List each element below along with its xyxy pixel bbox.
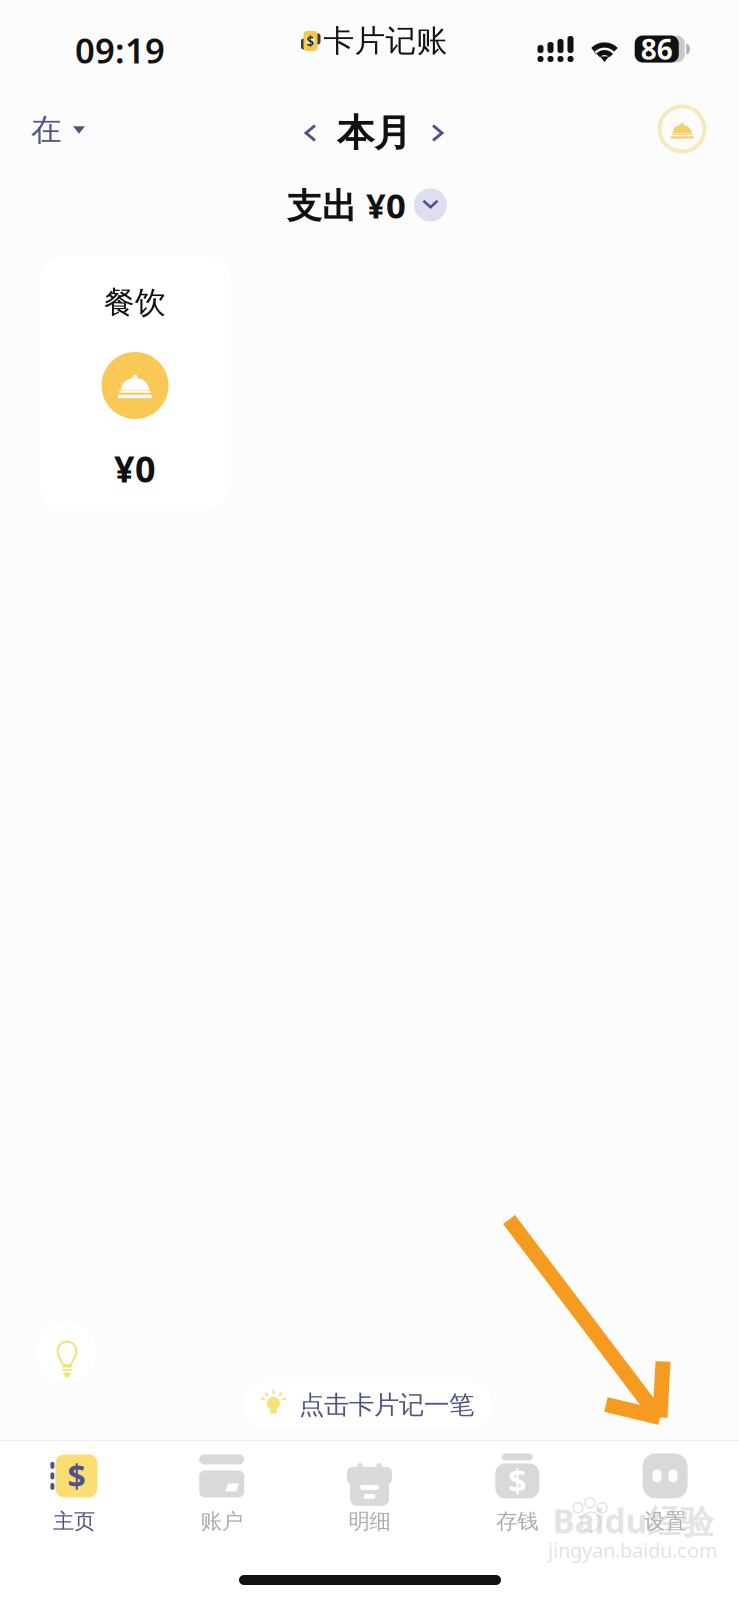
staticText: $ [508,1460,526,1502]
staticText: 账户 [201,1508,243,1535]
staticText: $ [67,1455,85,1497]
button[interactable]: 在 [17,99,99,161]
staticText: 点击卡片记一笔 [299,1389,474,1420]
staticText: $ [306,32,314,50]
staticText: 09:19 [75,27,165,73]
button[interactable]: 支出 ¥0 [277,174,457,236]
staticText: 本月 [337,110,411,156]
staticText: 在 [31,111,62,149]
staticText: jingyan.baidu.com [548,1537,718,1563]
button[interactable]: 下一个月 [415,111,460,154]
button[interactable]: 设置 [591,1440,739,1546]
staticText: 设置 [644,1508,686,1535]
button[interactable]: 上一个月 [288,111,333,154]
button[interactable]: 小贴士 [31,1316,103,1388]
staticText: Baidu经验 [552,1498,713,1543]
staticText: ¥0 [114,445,156,492]
button[interactable]: $ [0,1440,148,1546]
staticText: 卡片记账 [323,22,447,60]
button[interactable]: 账户 [148,1440,296,1546]
staticText: 主页 [53,1508,95,1535]
button[interactable]: 明细 [296,1440,443,1546]
staticText: 86 [641,30,673,68]
staticText: 支出 ¥0 [287,182,406,228]
staticText: 存钱 [496,1508,538,1535]
staticText: 明细 [348,1508,390,1535]
button[interactable]: 餐饮 [39,255,231,510]
button[interactable]: $ [443,1440,591,1546]
staticText: 餐饮 [104,284,166,321]
button[interactable]: 餐饮 [653,100,711,158]
